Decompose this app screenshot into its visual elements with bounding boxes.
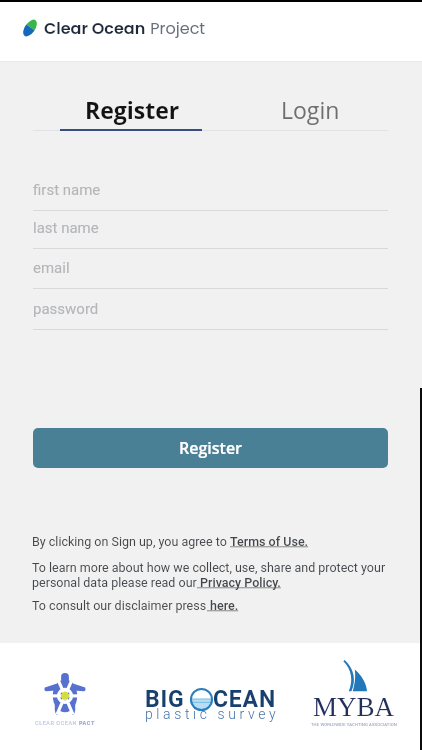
staticText: last name [33,219,99,237]
staticText: email [33,259,70,277]
staticText: THE WORLDWIDE YACHTING ASSOCIATION [311,722,397,727]
staticText: Register [85,94,180,125]
button[interactable]: Terms of Use. [230,534,309,549]
button[interactable]: first name [33,179,388,210]
button[interactable]: Register [58,92,206,126]
staticText: Clear Ocean [44,17,146,39]
staticText: BIG [145,686,185,713]
staticText: Project [146,17,206,39]
staticText: MYBA [313,692,395,722]
staticText: password [33,300,99,318]
staticText: PACT [79,720,95,726]
staticText: personal data please read our [32,575,197,590]
staticText: Login [281,94,340,125]
button[interactable]: Login [236,92,384,126]
button[interactable]: Privacy Policy. [197,575,281,590]
staticText: To consult our disclaimer press [32,598,207,613]
staticText: CLEAR OCEAN [35,720,79,726]
staticText: By clicking on Sign up, you agree to [32,534,230,549]
button[interactable]: Register [33,428,388,468]
staticText: CEAN [213,686,276,713]
button[interactable]: last name [33,217,388,248]
staticText: first name [33,181,101,199]
other: Clear Ocean logo [21,18,39,38]
button[interactable]: password [33,298,388,329]
button[interactable]: email [33,257,388,288]
staticText: To learn more about how we collect, use,… [32,560,386,575]
button[interactable]: here. [207,598,239,613]
staticText: Register [179,437,242,459]
staticText: plastic survey [145,706,280,722]
